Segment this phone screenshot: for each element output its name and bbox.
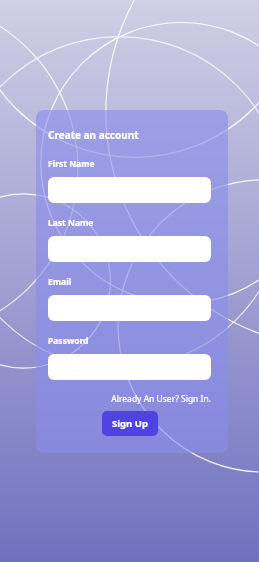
button[interactable]	[48, 295, 211, 321]
staticText: Email	[48, 276, 72, 288]
staticText: Last Name	[48, 217, 94, 229]
button[interactable]: Sign Up	[102, 411, 158, 436]
button[interactable]: Already An User? Sign In.	[48, 393, 211, 405]
staticText: Password	[48, 335, 89, 347]
button[interactable]	[48, 177, 211, 203]
staticText: Create an account	[48, 128, 139, 142]
button[interactable]	[48, 236, 211, 262]
staticText: Sign Up	[112, 417, 148, 430]
button[interactable]	[48, 354, 211, 380]
staticText: First Name	[48, 158, 95, 170]
